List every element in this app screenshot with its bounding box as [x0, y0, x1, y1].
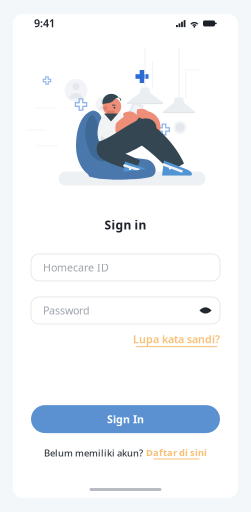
- staticText: Homecare ID: [43, 260, 109, 275]
- staticText: Sign in: [104, 217, 146, 233]
- button[interactable]: Lupa kata sandi?: [133, 332, 220, 347]
- staticText: Daftar di sini: [146, 446, 207, 458]
- staticText: Sign In: [107, 412, 144, 426]
- staticText: Lupa kata sandi?: [133, 332, 220, 346]
- staticText: Belum memiliki akun?: [44, 447, 143, 459]
- staticText: 9:41: [34, 16, 55, 30]
- staticText: Password: [43, 303, 90, 318]
- button[interactable]: Sign In: [31, 405, 220, 433]
- button[interactable]: Daftar di sini: [146, 446, 207, 459]
- button[interactable]: Password: [31, 297, 220, 324]
- button[interactable]: Homecare ID: [31, 254, 220, 281]
